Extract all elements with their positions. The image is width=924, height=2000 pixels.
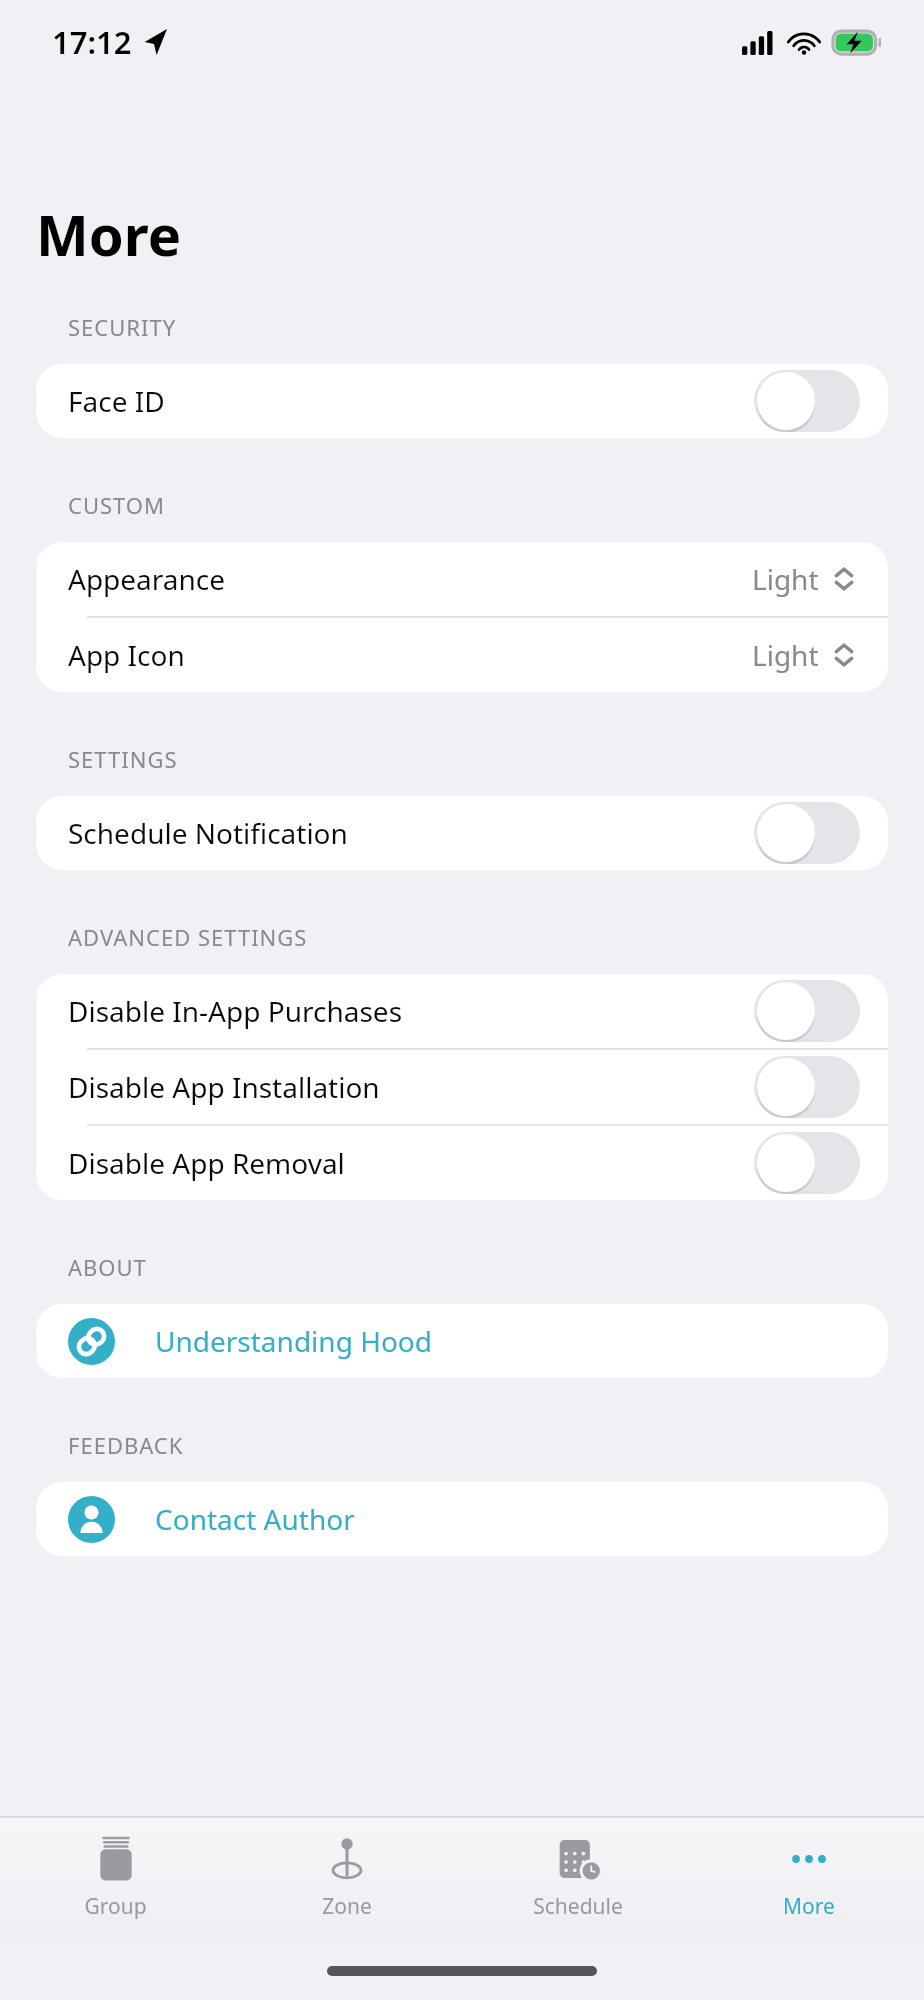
other: Toggle (754, 1056, 860, 1118)
staticText: CUSTOM (68, 490, 165, 520)
button[interactable]: Schedule Notification (36, 796, 888, 870)
staticText: Appearance (68, 560, 752, 598)
other: Toggle (754, 1132, 860, 1194)
staticText: Face ID (68, 382, 754, 420)
staticText: SETTINGS (68, 744, 178, 774)
staticText: Disable App Installation (68, 1068, 754, 1106)
button[interactable]: More (693, 1818, 924, 1940)
staticText: More (783, 1892, 835, 1921)
staticText: Disable In-App Purchases (68, 992, 754, 1030)
staticText: More (36, 196, 182, 272)
button[interactable]: Face ID (36, 364, 888, 438)
staticText: Zone (322, 1892, 372, 1921)
staticText: 17:12 (52, 21, 132, 63)
staticText: Contact Author (155, 1500, 355, 1538)
button[interactable]: Zone (231, 1818, 462, 1940)
button[interactable]: Group (0, 1818, 231, 1940)
staticText: SECURITY (68, 312, 177, 342)
staticText: FEEDBACK (68, 1430, 184, 1460)
button[interactable]: Contact Author (36, 1482, 888, 1556)
staticText: Disable App Removal (68, 1144, 754, 1182)
staticText: Light (752, 636, 819, 674)
button[interactable]: Disable App Removal (36, 1126, 888, 1200)
staticText: Group (84, 1892, 147, 1921)
staticText: App Icon (68, 636, 752, 674)
staticText: Schedule Notification (68, 814, 754, 852)
button[interactable]: Schedule (462, 1818, 693, 1940)
button[interactable]: Appearance (36, 542, 888, 616)
button[interactable]: Disable App Installation (36, 1050, 888, 1124)
button[interactable]: Disable In-App Purchases (36, 974, 888, 1048)
staticText: ABOUT (68, 1252, 147, 1282)
staticText: Light (752, 560, 819, 598)
button[interactable]: App Icon (36, 618, 888, 692)
staticText: ADVANCED SETTINGS (68, 922, 308, 952)
staticText: Understanding Hood (155, 1322, 432, 1360)
button[interactable]: Understanding Hood (36, 1304, 888, 1378)
other: Toggle (754, 802, 860, 864)
other: Toggle (754, 370, 860, 432)
staticText: Schedule (533, 1892, 623, 1921)
other: Toggle (754, 980, 860, 1042)
